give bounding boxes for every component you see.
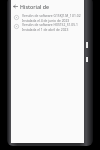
staticText: Instalada el 4 de junio de 2023 (22, 18, 70, 22)
staticText: Versión de software G1SKJ1.M_1U1.02 V1.1 (22, 13, 83, 17)
staticText: Instalada el 1 de abril de 2023 (22, 27, 69, 31)
button[interactable]: Versión de software H0S1S2_S1.05.1 (11, 22, 84, 31)
staticText: Versión de software H0S1S2_S1.05.1 (22, 22, 78, 26)
staticText: Historial de actualizaciones (20, 3, 84, 10)
button[interactable]: Atrás (11, 2, 20, 11)
button[interactable]: Versión de software G1SKJ1.M_1U1.02 V1.1 (11, 13, 84, 22)
